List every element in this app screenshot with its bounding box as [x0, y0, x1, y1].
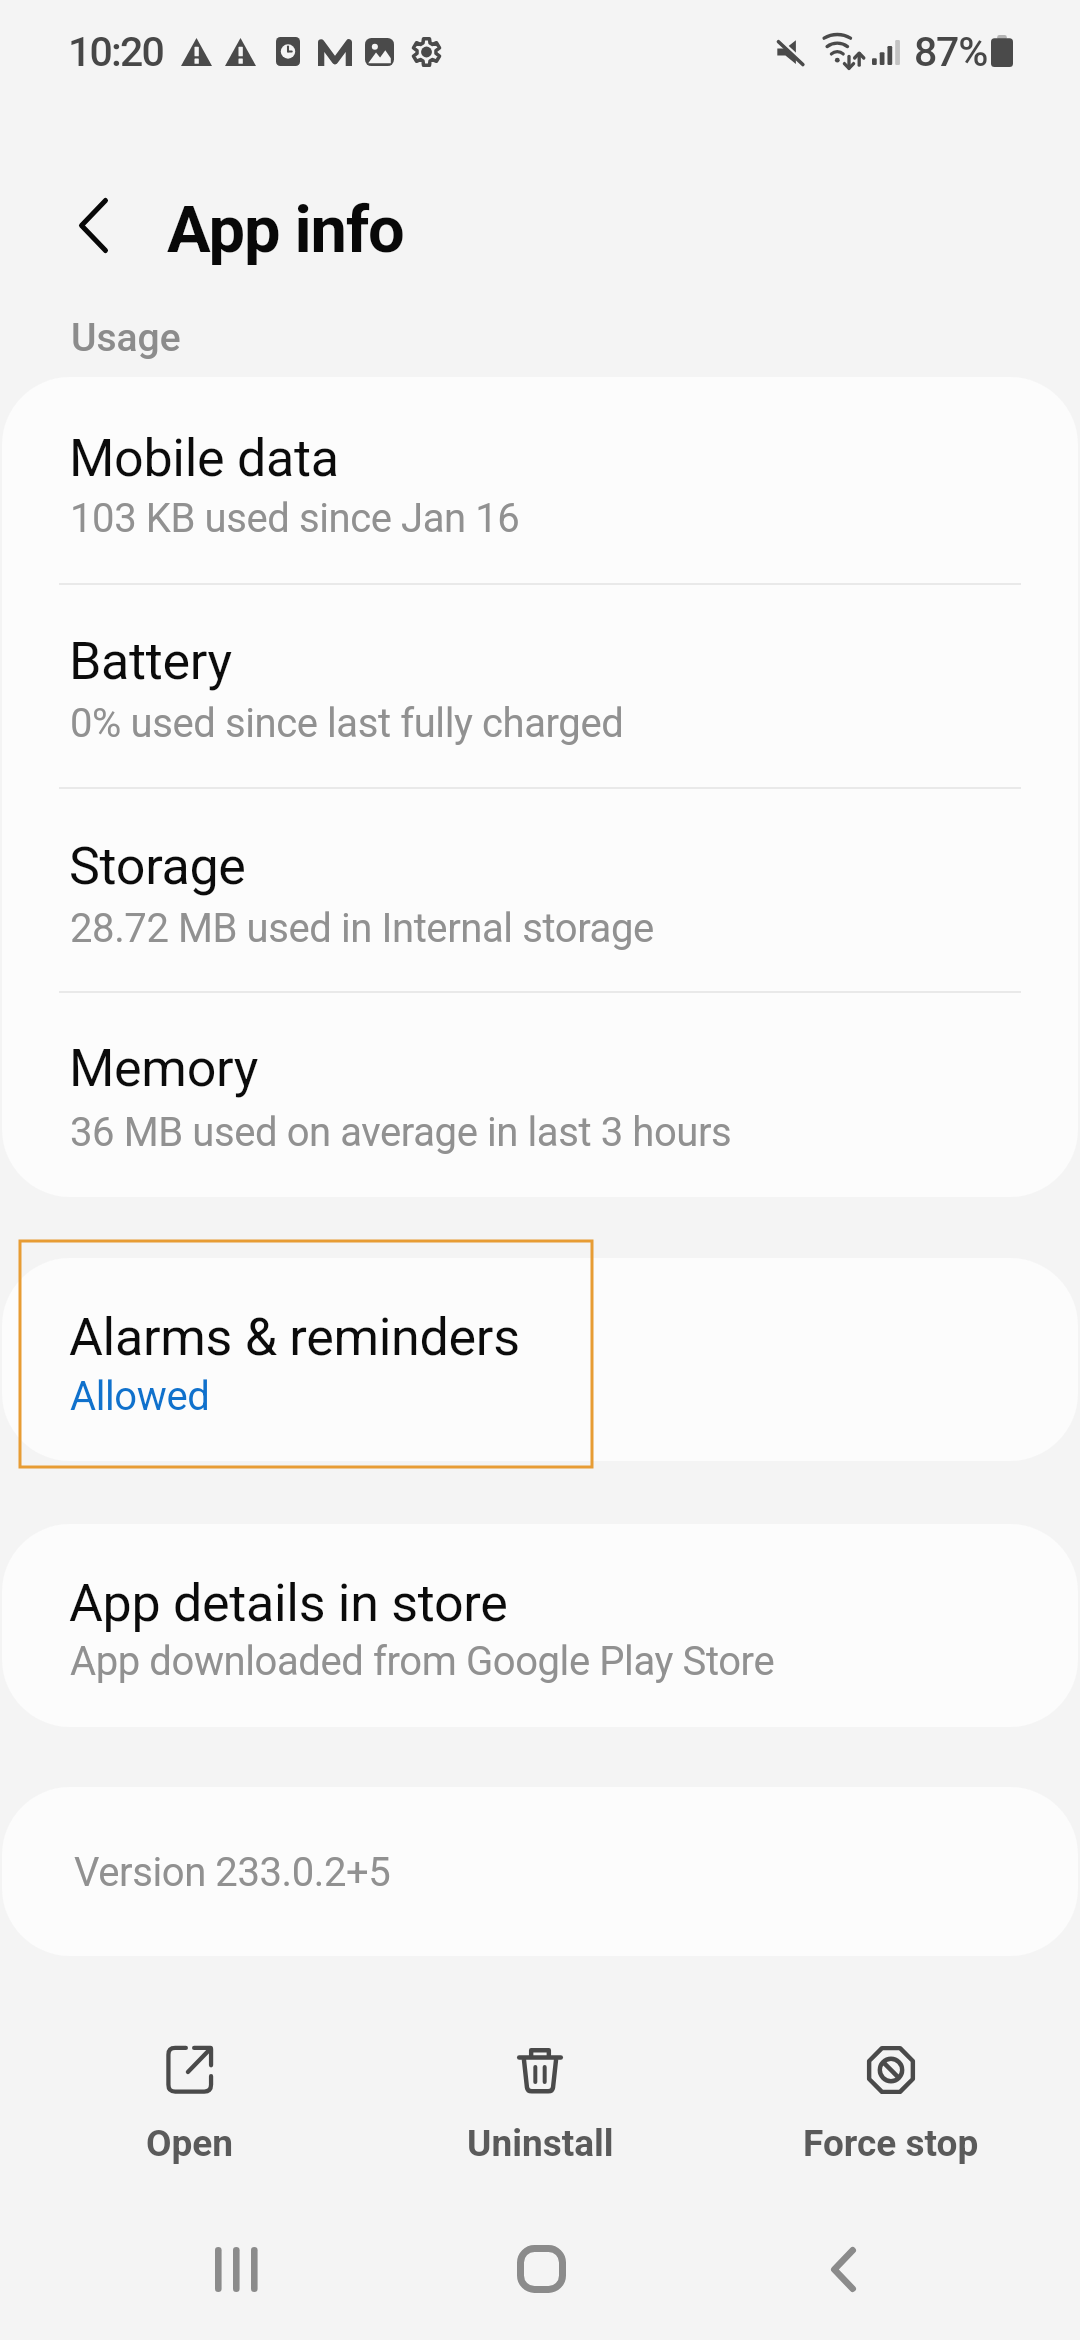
button[interactable]: Open [40, 2018, 340, 2179]
button[interactable]: Battery [2, 584, 1078, 788]
staticText: App downloaded from Google Play Store [70, 1638, 775, 1685]
staticText: 0% used since last fully charged [70, 700, 624, 747]
staticText: App details in store [69, 1573, 508, 1634]
staticText: 36 MB used on average in last 3 hours [70, 1109, 732, 1156]
staticText: Battery [69, 631, 232, 692]
button[interactable]: Force stop [741, 2018, 1041, 2179]
button[interactable]: Back [773, 2199, 913, 2339]
staticText: Allowed [70, 1373, 210, 1420]
staticText: Force stop [803, 2122, 979, 2165]
staticText: Version 233.0.2+5 [74, 1849, 391, 1896]
staticText: Mobile data [69, 428, 339, 489]
staticText: 87% [914, 28, 988, 76]
button[interactable]: Back [33, 165, 153, 285]
staticText: Uninstall [467, 2122, 614, 2165]
button[interactable]: Alarms & reminders [2, 1258, 1078, 1461]
button[interactable]: App details in store [2, 1524, 1078, 1727]
button[interactable]: Version 233.0.2+5 [2, 1787, 1078, 1956]
staticText: Storage [69, 836, 246, 897]
staticText: 103 KB used since Jan 16 [70, 495, 520, 542]
staticText: 10:20 [68, 28, 164, 76]
staticText: Memory [69, 1038, 259, 1099]
button[interactable]: Mobile data [2, 377, 1078, 584]
button[interactable]: Recent apps [166, 2199, 306, 2339]
staticText: App info [167, 192, 404, 268]
button[interactable]: Storage [2, 788, 1078, 992]
staticText: 28.72 MB used in Internal storage [70, 905, 654, 952]
staticText: Alarms & reminders [69, 1307, 520, 1368]
staticText: Open [146, 2122, 234, 2165]
button[interactable]: Home [471, 2199, 611, 2339]
button[interactable]: Memory [2, 992, 1078, 1197]
staticText: Usage [71, 315, 181, 361]
button[interactable]: Uninstall [390, 2018, 690, 2179]
